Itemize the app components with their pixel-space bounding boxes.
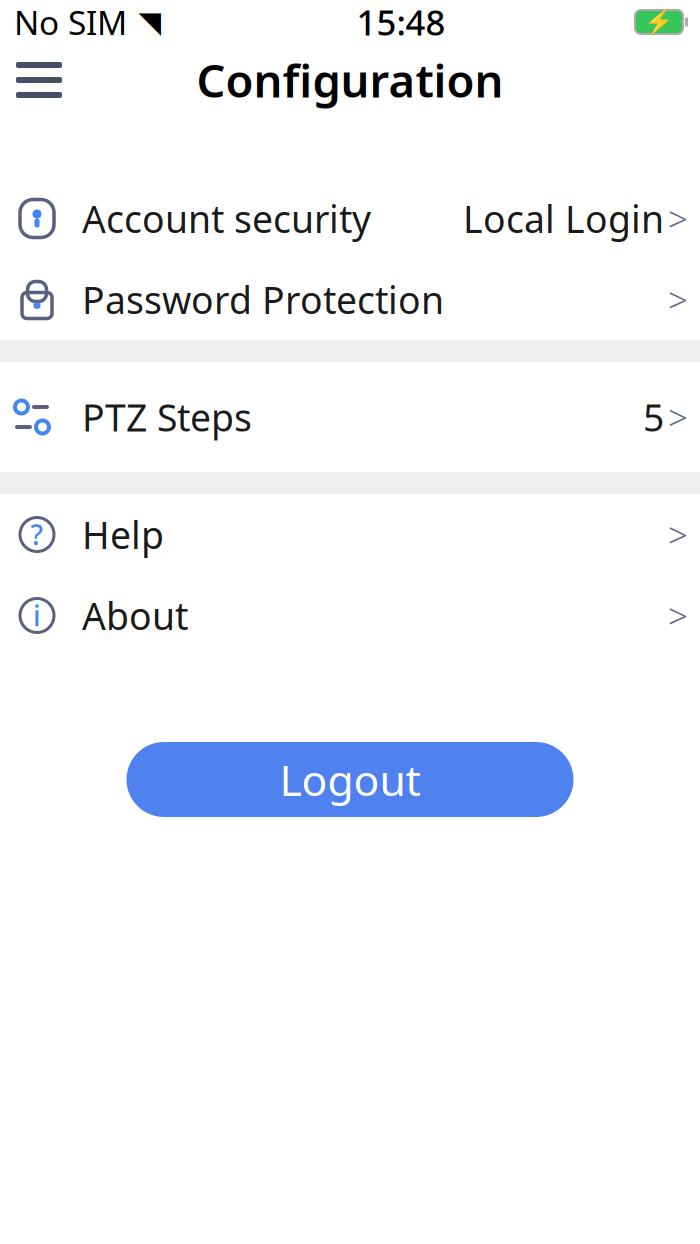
staticText: Help (82, 510, 164, 559)
staticText: PTZ Steps (82, 392, 252, 442)
button[interactable]: PTZ Steps (0, 376, 700, 457)
staticText: > (668, 394, 688, 440)
button[interactable]: Menu (8, 49, 70, 111)
button[interactable]: ? (0, 494, 700, 575)
staticText: Logout (279, 751, 420, 808)
staticText: 5 (643, 392, 664, 442)
staticText: > (668, 195, 688, 241)
button[interactable]: Password Protection (0, 259, 700, 340)
button[interactable]: Logout (126, 742, 573, 817)
staticText: i (33, 597, 41, 634)
staticText: Configuration (196, 50, 503, 110)
staticText: No SIM (14, 0, 127, 44)
staticText: > (668, 592, 688, 638)
button[interactable]: i (0, 575, 700, 656)
staticText: ? (30, 516, 43, 553)
staticText: About (82, 591, 188, 640)
staticText: ◥ (138, 5, 161, 39)
staticText: > (668, 511, 688, 557)
staticText: 15:48 (356, 0, 445, 45)
staticText: Local Login (463, 194, 664, 243)
button[interactable]: Account security (0, 178, 700, 259)
staticText: > (668, 276, 688, 322)
staticText: Password Protection (82, 275, 444, 324)
staticText: ⚡ (644, 8, 674, 36)
staticText: Account security (82, 194, 371, 243)
